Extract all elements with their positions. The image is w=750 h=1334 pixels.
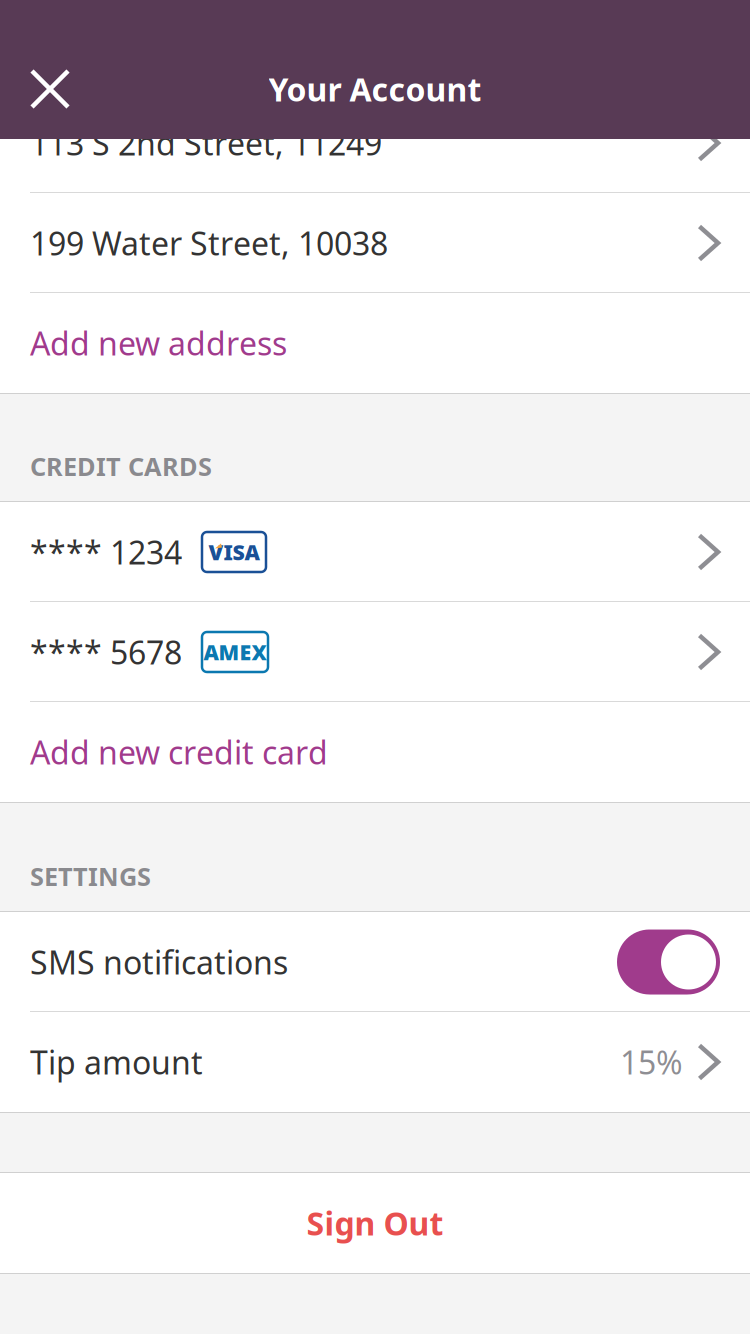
staticText: 199 Water Street, 10038 <box>30 222 388 264</box>
button[interactable]: Tip amount <box>0 1012 750 1112</box>
staticText: VISA <box>208 538 259 566</box>
staticText: CREDIT CARDS <box>30 449 212 483</box>
button[interactable]: 113 S 2nd Street, 11249 <box>0 139 750 193</box>
button[interactable]: **** 1234 <box>0 502 750 602</box>
button[interactable]: Sign Out <box>0 1173 750 1273</box>
staticText: Tip amount <box>30 1041 203 1083</box>
button[interactable]: **** 5678 <box>0 602 750 702</box>
button[interactable]: 199 Water Street, 10038 <box>0 193 750 293</box>
staticText: Sign Out <box>306 1202 443 1244</box>
staticText: Your Account <box>268 68 481 110</box>
staticText: Add new address <box>30 322 287 364</box>
button[interactable]: SMS notifications <box>0 912 750 1012</box>
staticText: Add new credit card <box>30 731 328 773</box>
button[interactable]: Close <box>0 64 94 114</box>
staticText: 113 S 2nd Street, 11249 <box>30 122 382 164</box>
staticText: **** 5678 <box>30 631 182 673</box>
staticText: **** 1234 <box>30 531 182 573</box>
staticText: AMEX <box>203 638 266 666</box>
staticText: SMS notifications <box>30 941 288 983</box>
button[interactable]: Add new credit card <box>0 702 750 802</box>
button[interactable]: Add new address <box>0 293 750 393</box>
staticText: SETTINGS <box>30 859 151 893</box>
staticText: 15% <box>620 1041 683 1083</box>
